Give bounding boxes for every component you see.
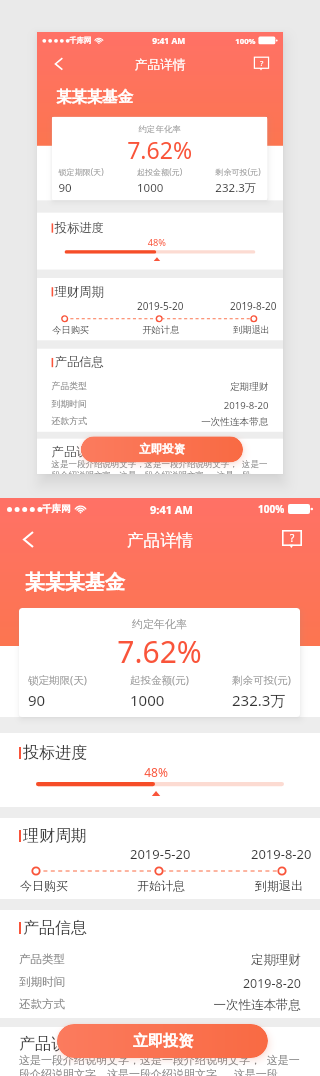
staticText: 起投金额(元) [137,166,182,177]
staticText: 48% [140,764,172,780]
staticText: 到期退出 [233,324,270,336]
staticText: 48% [145,236,169,249]
staticText: 今日购买 [52,324,89,336]
staticText: 产品详情 [135,57,185,73]
staticText: 投标进度 [55,220,104,236]
staticText: 产品类型 [19,952,65,966]
staticText: 还款方式 [19,997,65,1011]
staticText: 这是一段介绍说明文字，这是一段介绍说明文字， 这是一段介绍说明文字，这是一段介绍… [19,1052,301,1076]
staticText: 产品类型 [52,381,87,392]
button[interactable]: Back [45,50,72,77]
staticText: 232.3万 [215,180,257,195]
staticText: 到期退出 [255,878,303,893]
staticText: 9:41 AM [150,502,193,517]
staticText: 100% [258,502,285,516]
staticText: 产品说明 [52,444,101,459]
staticText: 2019-8-20 [230,299,277,313]
staticText: ? [290,531,295,545]
staticText: 定期理财 [37,381,268,393]
staticText: 千库网 [42,503,71,515]
staticText: 约定年化率 [19,617,300,631]
staticText: 产品信息 [23,918,87,938]
staticText: 90 [58,180,72,195]
staticText: 2019-8-20 [251,845,312,863]
staticText: 锁定期限(天) [28,673,87,687]
staticText: 开始计息 [142,324,179,336]
staticText: 千库网 [69,36,92,45]
staticText: ? [260,57,264,68]
staticText: 100% [235,35,256,46]
button[interactable]: Back [10,521,46,557]
staticText: 锁定期限(天) [58,166,104,177]
button[interactable]: 立即投资 [57,1024,268,1058]
staticText: 理财周期 [55,284,104,300]
staticText: 立即投资 [133,1032,193,1051]
staticText: 定期理财 [0,952,301,968]
staticText: 232.3万 [232,690,286,710]
staticText: 投标进度 [23,743,87,763]
staticText: 这是一段介绍说明文字，这是一段介绍说明文字， 这是一段介绍说明文字，这是一段介绍… [52,458,268,474]
button[interactable]: Help [248,50,275,77]
staticText: 某某某基金 [56,87,133,107]
staticText: 开始计息 [137,878,185,893]
staticText: 理财周期 [23,826,87,846]
staticText: 1000 [137,180,164,195]
staticText: 还款方式 [52,416,87,426]
staticText: 9:41 AM [152,35,185,47]
staticText: 产品信息 [55,355,104,370]
staticText: 2019-5-20 [137,299,184,313]
staticText: 起投金额(元) [130,673,189,687]
staticText: 一次性连本带息 [0,997,301,1013]
button[interactable]: Help [274,521,310,557]
staticText: 一次性连本带息 [37,416,268,428]
staticText: 立即投资 [139,442,185,457]
staticText: 到期时间 [52,399,87,409]
staticText: 2019-5-20 [130,845,191,863]
staticText: 到期时间 [19,975,65,989]
staticText: 7.62% [19,631,300,672]
staticText: 7.62% [52,134,268,166]
staticText: 产品说明 [19,1034,83,1054]
staticText: 约定年化率 [52,123,268,134]
staticText: 剩余可投(元) [232,673,291,687]
staticText: 2019-8-20 [37,399,268,412]
staticText: 某某某基金 [25,570,125,595]
staticText: 1000 [130,690,165,710]
staticText: 2019-8-20 [0,975,301,992]
staticText: 剩余可投(元) [215,166,261,177]
staticText: 产品详情 [127,530,193,551]
button[interactable]: 立即投资 [81,436,243,462]
staticText: 今日购买 [20,878,68,893]
staticText: 90 [28,690,46,710]
